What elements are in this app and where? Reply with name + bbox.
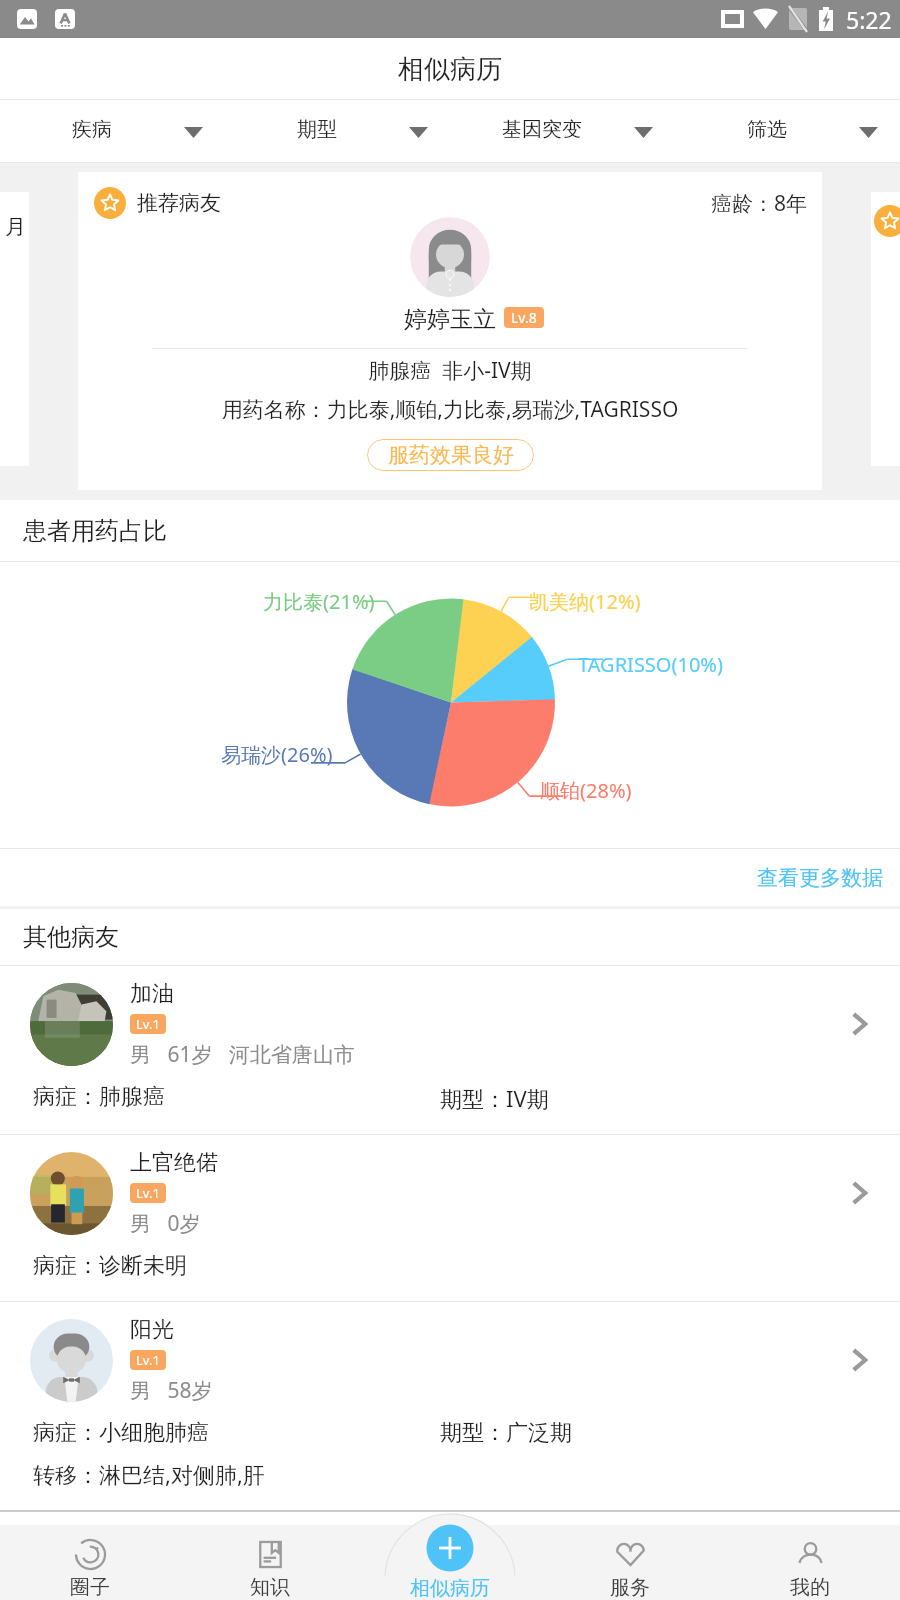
staticText: 病症：诊断未明 (33, 1252, 187, 1280)
staticText: 顺铂(28%) (540, 777, 632, 804)
button[interactable]: Open 加油 (838, 1002, 882, 1046)
button[interactable]: Open 上官绝偌 (838, 1171, 882, 1215)
staticText: 其他病友 (23, 922, 119, 952)
staticText: 上官绝偌 (130, 1149, 218, 1177)
staticText: 肺腺癌 非小-IV期 (78, 356, 822, 385)
staticText: Lv.1 (136, 1184, 160, 1202)
staticText: 转移：淋巴结,对侧肺,肝 (33, 1459, 265, 1489)
staticText: TAGRISSO(10%) (578, 651, 723, 678)
staticText: 阳光 (130, 1316, 174, 1344)
button[interactable]: 疾病 (0, 100, 225, 125)
staticText: 病症：肺腺癌 (33, 1083, 165, 1111)
button[interactable]: 加油 (0, 966, 900, 1134)
button[interactable]: 知识 (180, 1510, 360, 1600)
staticText: 查看更多数据 (757, 865, 883, 891)
staticText: 圈子 (70, 1575, 110, 1600)
staticText: 男 0岁 (130, 1209, 201, 1238)
staticText: Lv.1 (136, 1351, 160, 1369)
staticText: 服药效果良好 (388, 442, 514, 468)
staticText: Lv.1 (136, 1015, 160, 1033)
staticText: 知识 (250, 1575, 290, 1600)
button[interactable]: 上官绝偌 (0, 1135, 900, 1301)
staticText: 月 (5, 214, 26, 240)
staticText: 易瑞沙(26%) (221, 741, 333, 768)
staticText: 男 58岁 (130, 1376, 213, 1405)
staticText: 期型：IV期 (440, 1083, 549, 1113)
staticText: 期型 (225, 117, 409, 142)
button[interactable]: Open 阳光 (838, 1338, 882, 1382)
staticText: Lv.8 (511, 308, 537, 327)
button[interactable]: 服务 (540, 1510, 720, 1600)
button[interactable]: 筛选 (675, 100, 900, 125)
button[interactable]: 查看更多数据 (0, 849, 900, 906)
staticText: 婷婷玉立 (78, 305, 822, 334)
staticText: 病症：小细胞肺癌 (33, 1419, 209, 1447)
button[interactable]: 基因突变 (450, 100, 675, 125)
staticText: 我的 (790, 1575, 830, 1600)
staticText: 凯美纳(12%) (529, 588, 641, 615)
button[interactable]: 阳光 (0, 1302, 900, 1510)
staticText: 力比泰(21%) (263, 588, 375, 615)
staticText: 基因突变 (450, 117, 634, 142)
staticText: 疾病 (0, 117, 184, 142)
staticText: 期型：广泛期 (440, 1419, 572, 1447)
staticText: 患者用药占比 (23, 516, 167, 546)
button[interactable]: 期型 (225, 100, 450, 125)
button[interactable]: 相似病历 (360, 1510, 540, 1600)
button[interactable]: 服药效果良好 (367, 439, 534, 471)
staticText: 相似病历 (410, 1576, 490, 1600)
button[interactable]: 推荐病友 (78, 172, 822, 490)
staticText: 加油 (130, 980, 174, 1008)
button[interactable]: 圈子 (0, 1510, 180, 1600)
staticText: 推荐病友 (137, 190, 221, 216)
staticText: 男 61岁 河北省唐山市 (130, 1040, 355, 1069)
staticText: 服务 (610, 1575, 650, 1600)
staticText: 癌龄：8年 (711, 189, 808, 218)
staticText: 5:22 (846, 4, 892, 35)
staticText: 筛选 (675, 117, 859, 142)
staticText: 相似病历 (398, 53, 502, 86)
staticText: 用药名称：力比泰,顺铂,力比泰,易瑞沙,TAGRISSO (78, 395, 822, 424)
button[interactable]: 我的 (720, 1510, 900, 1600)
